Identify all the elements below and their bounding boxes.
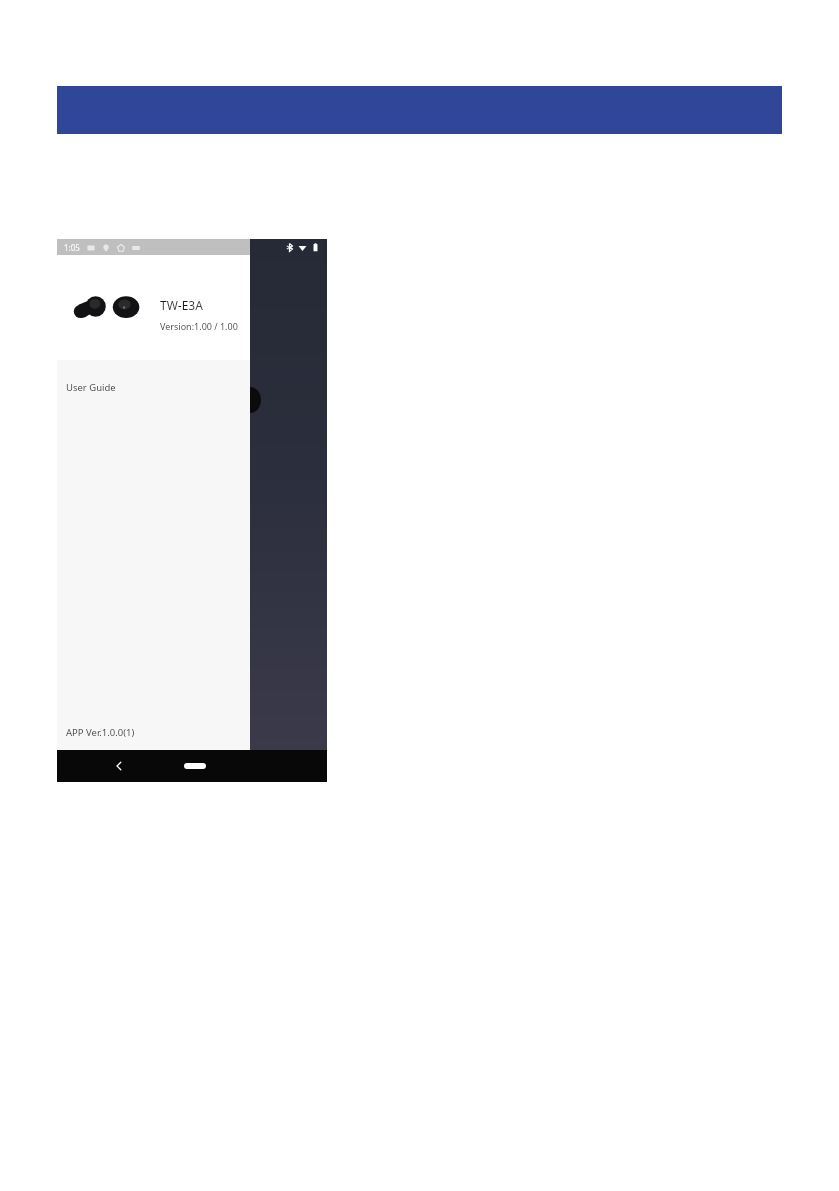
button[interactable]: TW-E3A (57, 255, 250, 360)
staticText: User Guide (66, 381, 116, 394)
button[interactable]: Home (173, 750, 217, 782)
button[interactable]: User Guide (57, 360, 250, 406)
staticText: 1:05 (64, 242, 80, 253)
staticText: TW-E3A (160, 297, 203, 313)
staticText: APP Ver.1.0.0(1) (66, 726, 135, 739)
button[interactable]: Back (105, 750, 133, 782)
staticText: Version:1.00 / 1.00 (160, 320, 238, 332)
